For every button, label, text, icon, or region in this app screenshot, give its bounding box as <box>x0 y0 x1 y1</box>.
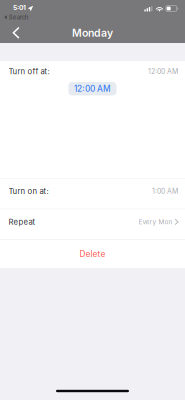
staticText: Delete <box>79 249 105 259</box>
staticText: 12:00 AM <box>74 84 111 94</box>
staticText: Turn on at: <box>8 186 48 196</box>
staticText: Search <box>9 14 29 21</box>
staticText: 12:00 AM <box>148 67 178 76</box>
staticText: 1:00 AM <box>152 187 178 195</box>
button[interactable]: 12:00 AM <box>68 82 116 95</box>
staticText: Monday <box>72 27 113 39</box>
button[interactable]: Delete <box>0 240 185 268</box>
staticText: Turn off at: <box>8 67 49 76</box>
button[interactable]: Back <box>0 21 30 43</box>
staticText: 5:01 <box>13 3 26 12</box>
button[interactable]: Repeat <box>0 209 185 239</box>
staticText: Repeat <box>8 217 35 227</box>
button[interactable]: Turn off at: <box>0 61 185 82</box>
button[interactable]: Turn on at: <box>0 179 185 209</box>
staticText: Every Mon <box>139 218 173 226</box>
